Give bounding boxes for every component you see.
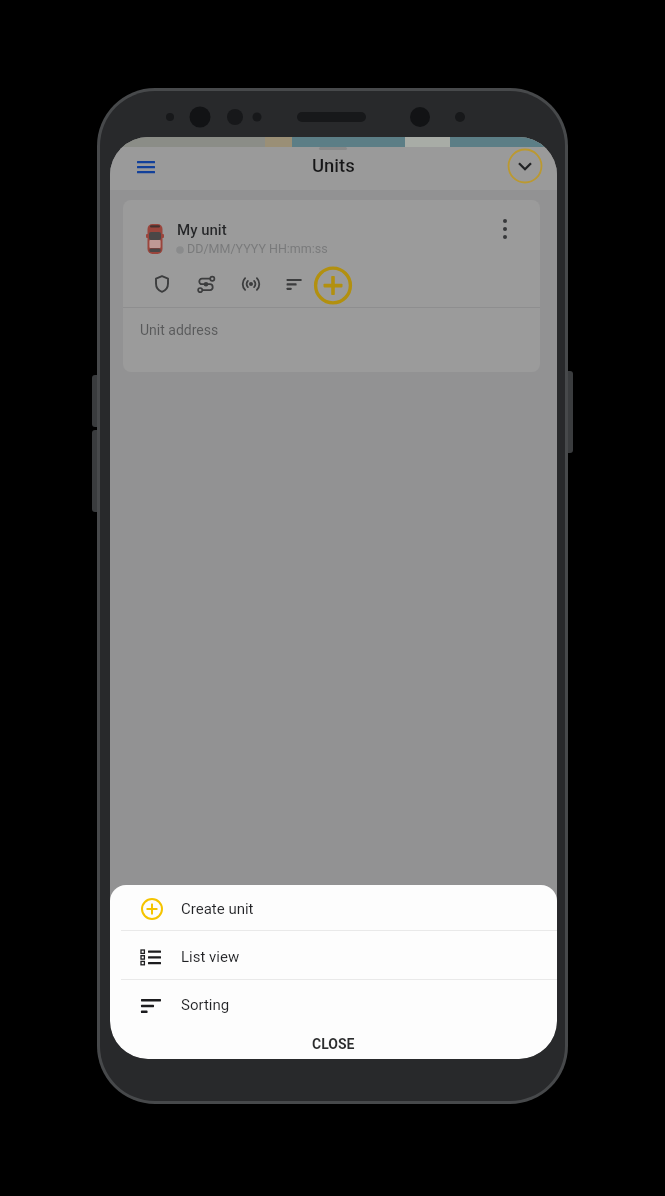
button[interactable]: CLOSE (253, 1029, 413, 1059)
button[interactable]: List view (110, 931, 557, 979)
button[interactable] (149, 271, 175, 297)
staticText: CLOSE (312, 1036, 355, 1052)
button[interactable] (491, 214, 519, 244)
button[interactable]: Sorting (110, 980, 557, 1027)
staticText: Sorting (181, 996, 230, 1014)
button[interactable]: Create unit (110, 885, 557, 930)
staticText: List view (181, 948, 240, 966)
staticText: Unit address (140, 322, 219, 338)
button[interactable] (313, 265, 353, 305)
staticText: DD/MM/YYYY HH:mm:ss (187, 241, 328, 256)
button[interactable] (279, 271, 305, 297)
button[interactable]: My unit (123, 200, 540, 372)
button[interactable] (508, 149, 542, 183)
button[interactable] (193, 271, 219, 297)
button[interactable] (238, 271, 264, 297)
staticText: Create unit (181, 900, 254, 918)
staticText: My unit (177, 221, 227, 239)
button[interactable] (127, 151, 165, 185)
staticText: Units (312, 155, 355, 177)
